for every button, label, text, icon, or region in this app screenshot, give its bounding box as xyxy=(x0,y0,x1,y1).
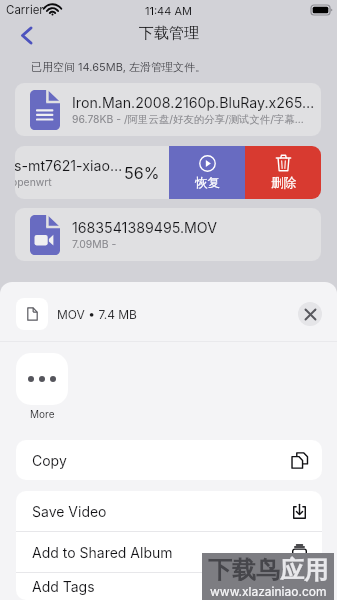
staticText: 应用 xyxy=(280,555,328,585)
staticText: www.xlazainiao.com xyxy=(210,584,327,599)
button[interactable]: 恢复 xyxy=(169,146,245,199)
staticText: 56% xyxy=(124,163,160,182)
button[interactable]: 删除 xyxy=(245,146,321,199)
staticText: More xyxy=(30,408,55,420)
staticText: 11:44 AM xyxy=(145,4,192,17)
staticText: 删除 xyxy=(271,175,296,191)
button[interactable]: Copy xyxy=(16,440,322,480)
staticText: 恢复 xyxy=(195,175,220,191)
staticText: Carrier xyxy=(6,3,44,17)
staticText: Iron.Man.2008.2160p.BluRay.x265… xyxy=(72,94,315,111)
staticText: MOV • 7.4 MB xyxy=(57,307,137,322)
button[interactable]: Save Video xyxy=(16,491,322,531)
button[interactable]: Add to Shared Album xyxy=(16,532,322,572)
staticText: 1683541389495.MOV xyxy=(72,219,217,236)
button[interactable]: Close xyxy=(298,302,322,326)
staticText: s-mt7621-xiao… xyxy=(15,157,123,174)
button[interactable]: Add Tags xyxy=(16,573,322,600)
staticText: Save Video xyxy=(32,503,107,520)
button[interactable]: Iron.Man.2008.2160p.BluRay.x265… xyxy=(15,83,321,136)
button[interactable]: s-mt7621-xiao… xyxy=(15,146,169,199)
staticText: 7.09MB - xyxy=(72,238,120,251)
staticText: openwrt xyxy=(15,176,52,189)
staticText: 96.78KB - /阿里云盘/好友的分享/测试文件/字幕… xyxy=(72,113,304,126)
staticText: Add Tags xyxy=(32,578,95,595)
staticText: 已用空间 14.65MB, 左滑管理文件。 xyxy=(31,60,207,74)
staticText: 下载鸟 xyxy=(208,555,280,585)
staticText: Copy xyxy=(32,452,67,469)
staticText: 下载管理 xyxy=(139,24,199,43)
button[interactable]: MOV • 7.4 MB xyxy=(0,288,337,340)
button[interactable]: Back xyxy=(13,22,39,48)
staticText: Add to Shared Album xyxy=(32,544,173,561)
button[interactable]: More xyxy=(16,353,68,405)
button[interactable]: 1683541389495.MOV xyxy=(15,208,321,261)
